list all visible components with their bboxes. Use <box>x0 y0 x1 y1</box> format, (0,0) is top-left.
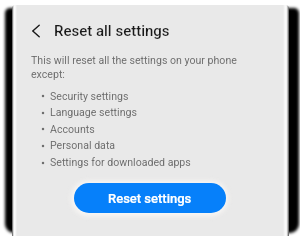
staticText: Reset all settings <box>54 22 170 40</box>
staticText: Settings for downloaded apps <box>50 156 191 168</box>
staticText: Security settings <box>50 90 129 102</box>
staticText: Personal data <box>50 139 116 151</box>
button[interactable]: Reset settings <box>74 183 226 213</box>
button[interactable]: Back <box>22 17 50 45</box>
staticText: Accounts <box>50 123 95 135</box>
staticText: Reset settings <box>108 191 192 206</box>
staticText: This will reset all the settings on your… <box>31 54 246 81</box>
staticText: Language settings <box>50 106 137 118</box>
